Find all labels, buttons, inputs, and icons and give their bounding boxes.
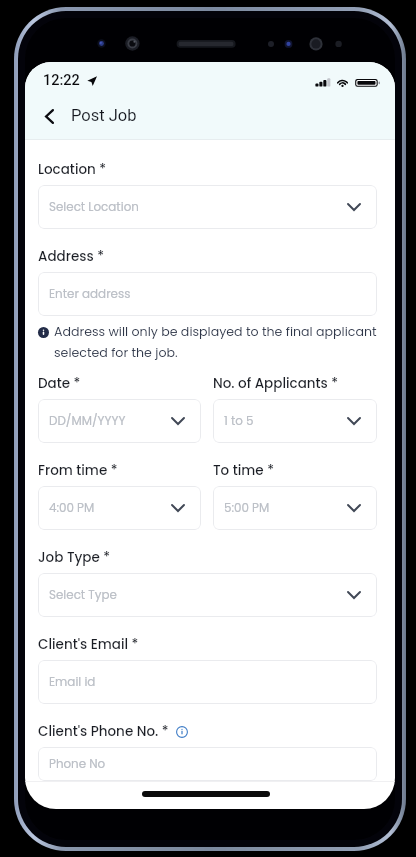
staticText: 4:00 PM bbox=[49, 500, 95, 517]
staticText: 1 to 5 bbox=[224, 413, 254, 430]
staticText: Date * bbox=[38, 374, 81, 393]
staticText: Location * bbox=[38, 160, 107, 179]
staticText: Address * bbox=[38, 247, 104, 266]
button[interactable]: Back bbox=[33, 100, 65, 132]
button[interactable]: Email id bbox=[38, 660, 377, 704]
staticText: Job Type * bbox=[38, 548, 111, 567]
button[interactable]: Phone No bbox=[38, 747, 377, 781]
staticText: Client's Email * bbox=[38, 635, 139, 654]
button[interactable]: Select Location bbox=[38, 185, 377, 229]
staticText: 5:00 PM bbox=[224, 500, 270, 517]
staticText: Address will only be displayed to the fi… bbox=[54, 323, 379, 362]
staticText: From time * bbox=[38, 461, 118, 480]
button[interactable]: Select Type bbox=[38, 573, 377, 617]
staticText: Post Job bbox=[71, 106, 137, 125]
button[interactable]: Enter address bbox=[38, 272, 377, 316]
staticText: 12:22 bbox=[43, 72, 80, 89]
staticText: Client's Phone No. * bbox=[38, 722, 169, 741]
staticText: Select Type bbox=[49, 587, 117, 604]
staticText: No. of Applicants * bbox=[213, 374, 339, 393]
staticText: To time * bbox=[213, 461, 274, 480]
staticText: DD/MM/YYYY bbox=[49, 413, 126, 430]
button[interactable]: 5:00 PM bbox=[213, 486, 377, 530]
staticText: Phone No bbox=[49, 756, 106, 773]
staticText: Enter address bbox=[49, 286, 131, 303]
staticText: Select Location bbox=[49, 199, 139, 216]
staticText: Email id bbox=[49, 674, 96, 691]
button[interactable]: 4:00 PM bbox=[38, 486, 201, 530]
button[interactable]: DD/MM/YYYY bbox=[38, 399, 201, 443]
button[interactable]: 1 to 5 bbox=[213, 399, 377, 443]
